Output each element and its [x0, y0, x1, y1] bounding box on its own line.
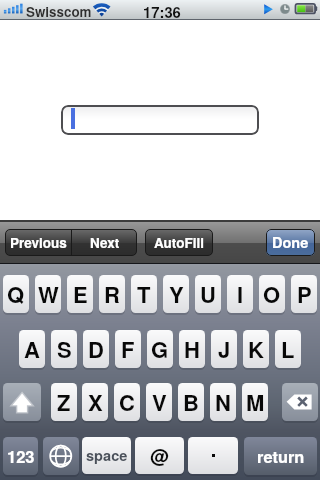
button[interactable]: return — [244, 437, 317, 475]
button[interactable] — [3, 383, 41, 421]
button[interactable]: W — [35, 275, 61, 313]
staticText: B — [183, 386, 199, 418]
button[interactable]: C — [114, 383, 140, 421]
other: Backspace — [282, 383, 318, 423]
button[interactable]: H — [179, 330, 205, 368]
staticText: Y — [169, 278, 184, 310]
button[interactable]: Q — [3, 275, 29, 313]
staticText: Q — [7, 278, 25, 310]
button[interactable]: R — [99, 275, 125, 313]
button[interactable]: B — [178, 383, 204, 421]
button[interactable]: J — [211, 330, 237, 368]
staticText: Previous — [10, 233, 67, 252]
staticText: G — [151, 333, 169, 365]
button[interactable]: I — [227, 275, 253, 313]
button[interactable]: Done — [266, 229, 315, 256]
button[interactable]: Previous — [5, 229, 71, 256]
button[interactable]: G — [147, 330, 173, 368]
button[interactable] — [282, 383, 318, 421]
staticText: M — [246, 386, 265, 418]
button[interactable]: Z — [51, 383, 77, 421]
staticText: I — [237, 278, 244, 310]
staticText: X — [88, 386, 103, 418]
staticText: return — [257, 445, 305, 468]
staticText: N — [215, 386, 231, 418]
button[interactable] — [188, 437, 238, 474]
staticText: C — [119, 386, 135, 418]
staticText: Next — [90, 233, 120, 252]
button[interactable]: AutoFill — [145, 229, 213, 256]
staticText: 17:36 — [143, 1, 181, 21]
staticText: V — [152, 386, 167, 418]
other: Switch keyboard — [43, 437, 79, 477]
staticText: P — [297, 278, 312, 310]
staticText: space — [86, 445, 128, 466]
button[interactable]: E — [67, 275, 93, 313]
staticText: O — [263, 278, 281, 310]
staticText: U — [200, 278, 216, 310]
staticText: A — [24, 333, 40, 365]
other: Shift — [3, 383, 41, 423]
button[interactable]: T — [131, 275, 157, 313]
staticText: W — [38, 278, 59, 310]
button[interactable]: D — [83, 330, 109, 368]
button[interactable]: V — [146, 383, 172, 421]
button[interactable]: @ — [135, 437, 184, 474]
staticText: Swisscom — [26, 2, 92, 21]
staticText: 123 — [7, 444, 35, 468]
button[interactable]: Next — [72, 229, 137, 256]
staticText: H — [184, 333, 200, 365]
staticText: Done — [272, 232, 309, 253]
staticText: J — [218, 333, 231, 365]
button[interactable]: Y — [163, 275, 189, 313]
button[interactable]: S — [51, 330, 77, 368]
staticText: AutoFill — [154, 233, 204, 252]
staticText: S — [57, 333, 72, 365]
staticText: E — [73, 278, 88, 310]
staticText: T — [137, 278, 151, 310]
staticText: F — [121, 333, 135, 365]
button[interactable]: A — [19, 330, 45, 368]
button[interactable]: X — [82, 383, 108, 421]
staticText: @ — [150, 442, 169, 469]
button[interactable]: F — [115, 330, 141, 368]
staticText: K — [248, 333, 264, 365]
button[interactable]: P — [291, 275, 317, 313]
staticText: Z — [57, 386, 71, 418]
button[interactable] — [61, 105, 259, 135]
button[interactable]: K — [243, 330, 269, 368]
button[interactable]: L — [275, 330, 301, 368]
button[interactable]: 123 — [3, 437, 38, 475]
button[interactable]: space — [82, 437, 131, 474]
staticText: R — [104, 278, 120, 310]
button[interactable]: O — [259, 275, 285, 313]
button[interactable]: M — [242, 383, 268, 421]
button[interactable]: N — [210, 383, 236, 421]
button[interactable]: U — [195, 275, 221, 313]
button[interactable] — [43, 437, 79, 475]
staticText: D — [88, 333, 104, 365]
staticText: L — [281, 333, 295, 365]
